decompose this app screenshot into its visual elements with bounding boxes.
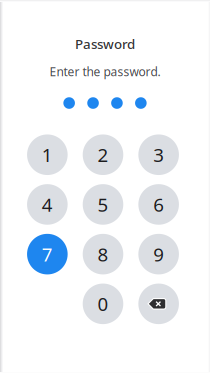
staticText: 3 [153, 142, 164, 167]
button[interactable]: 0 [83, 283, 123, 324]
button[interactable]: 4 [27, 184, 68, 225]
button[interactable]: 3 [138, 134, 179, 175]
staticText: 5 [97, 192, 108, 217]
button[interactable]: Delete [138, 283, 179, 324]
staticText: 4 [42, 192, 53, 217]
button[interactable]: 6 [138, 184, 179, 225]
button[interactable]: 1 [27, 134, 68, 175]
staticText: 0 [97, 291, 108, 316]
button[interactable]: 8 [83, 234, 123, 274]
button[interactable]: 5 [83, 184, 123, 225]
button[interactable]: 2 [83, 134, 123, 175]
staticText: Password [75, 35, 135, 53]
button[interactable]: 7 [27, 234, 68, 274]
staticText: 2 [97, 142, 108, 167]
staticText: Enter the password. [49, 64, 160, 80]
staticText: 7 [42, 242, 53, 266]
staticText: 1 [42, 142, 53, 167]
staticText: 9 [153, 242, 164, 266]
button[interactable]: 9 [138, 234, 179, 274]
staticText: 8 [97, 242, 108, 266]
staticText: 6 [153, 192, 164, 217]
